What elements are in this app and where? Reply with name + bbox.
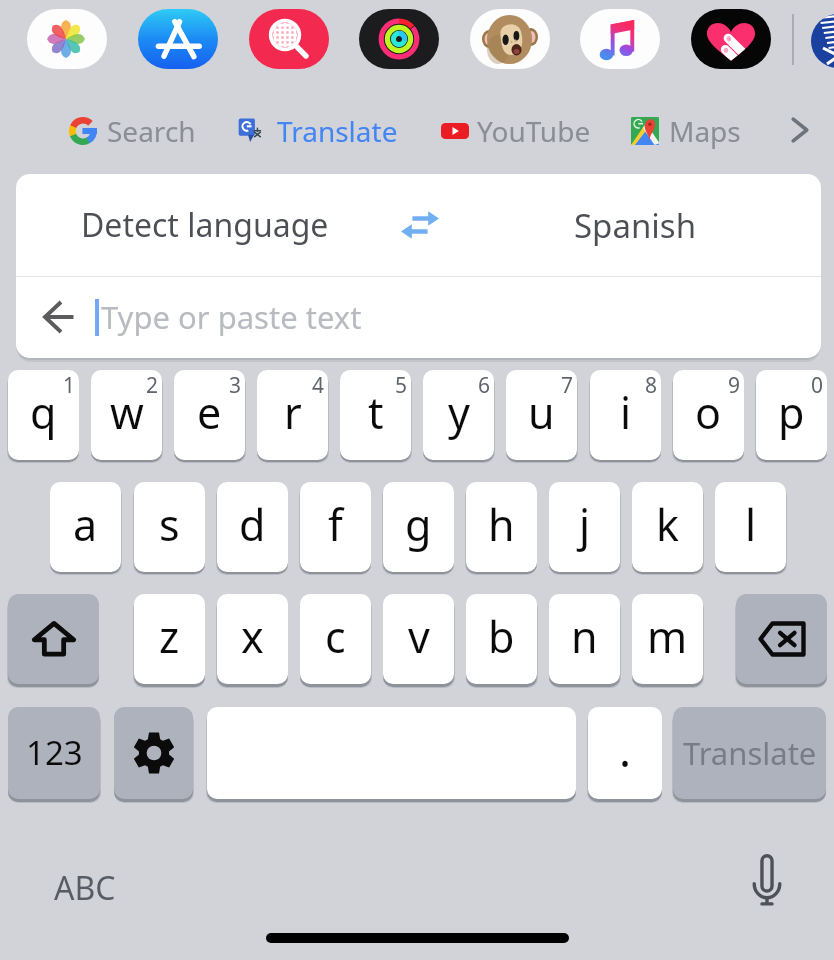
button[interactable] bbox=[59, 105, 207, 157]
button[interactable]: Siri Search bbox=[249, 9, 329, 69]
button[interactable]: l bbox=[715, 482, 786, 572]
button[interactable]: r bbox=[257, 370, 328, 460]
staticText: p bbox=[778, 383, 805, 442]
staticText: z bbox=[159, 607, 180, 666]
button[interactable]: c bbox=[300, 594, 371, 684]
button[interactable]: Photos bbox=[27, 9, 107, 69]
staticText: Translate bbox=[683, 732, 817, 774]
button[interactable]: f bbox=[300, 482, 371, 572]
staticText: Translate bbox=[277, 112, 398, 150]
staticText: s bbox=[159, 495, 180, 554]
staticText: a bbox=[73, 495, 98, 554]
staticText: 6 bbox=[478, 371, 491, 400]
button[interactable]: i bbox=[590, 370, 661, 460]
staticText: Maps bbox=[669, 112, 741, 150]
staticText: m bbox=[647, 607, 688, 666]
button[interactable]: q bbox=[8, 370, 79, 460]
staticText: g bbox=[405, 495, 432, 554]
staticText: 7 bbox=[561, 371, 574, 400]
staticText: w bbox=[110, 383, 144, 442]
button[interactable]: Spanish bbox=[446, 174, 821, 276]
staticText: 4 bbox=[312, 371, 325, 400]
button[interactable]: Backspace bbox=[736, 594, 827, 684]
button[interactable]: Swap languages bbox=[394, 174, 446, 276]
staticText: v bbox=[408, 607, 430, 666]
staticText: Search bbox=[107, 112, 196, 150]
button[interactable]: Translate bbox=[673, 707, 826, 799]
button[interactable]: j bbox=[549, 482, 620, 572]
staticText: k bbox=[656, 495, 679, 554]
button[interactable]: s bbox=[134, 482, 205, 572]
staticText: l bbox=[745, 495, 757, 554]
button[interactable]: e bbox=[174, 370, 245, 460]
staticText: i bbox=[620, 383, 632, 442]
staticText: h bbox=[488, 495, 515, 554]
button[interactable]: . bbox=[588, 707, 662, 799]
button[interactable]: x bbox=[217, 594, 288, 684]
staticText: j bbox=[579, 495, 591, 554]
staticText: t bbox=[368, 383, 384, 442]
button[interactable]: Type or paste text bbox=[101, 277, 801, 357]
button[interactable]: ABC bbox=[34, 856, 136, 920]
staticText: b bbox=[488, 607, 515, 666]
staticText: 1 bbox=[63, 371, 76, 400]
button[interactable]: Keyboard settings bbox=[114, 707, 193, 799]
staticText: 5 bbox=[395, 371, 408, 400]
button[interactable]: u bbox=[506, 370, 577, 460]
button[interactable]: t bbox=[340, 370, 411, 460]
button[interactable]: Fitness bbox=[359, 9, 439, 69]
staticText: o bbox=[695, 383, 722, 442]
button[interactable]: b bbox=[466, 594, 537, 684]
button[interactable]: d bbox=[217, 482, 288, 572]
staticText: 123 bbox=[26, 730, 83, 775]
staticText: r bbox=[284, 383, 302, 442]
button[interactable] bbox=[621, 105, 739, 157]
button[interactable]: m bbox=[632, 594, 703, 684]
button[interactable]: 123 bbox=[8, 707, 100, 799]
button[interactable]: App Store bbox=[138, 9, 218, 69]
staticText: ABC bbox=[54, 866, 116, 910]
staticText: u bbox=[528, 383, 555, 442]
staticText: . bbox=[619, 719, 632, 780]
staticText: 9 bbox=[728, 371, 741, 400]
staticText: d bbox=[239, 495, 266, 554]
button[interactable]: Health bbox=[691, 9, 771, 69]
staticText: q bbox=[30, 383, 57, 442]
button[interactable]: Music bbox=[580, 9, 660, 69]
button[interactable]: p bbox=[756, 370, 827, 460]
button[interactable]: y bbox=[423, 370, 494, 460]
button[interactable]: n bbox=[549, 594, 620, 684]
staticText: y bbox=[448, 383, 470, 442]
staticText: x bbox=[241, 607, 264, 666]
button[interactable]: a bbox=[50, 482, 121, 572]
button[interactable]: Back bbox=[28, 277, 90, 357]
staticText: 0 bbox=[811, 371, 824, 400]
button[interactable]: Shift bbox=[8, 594, 99, 684]
button[interactable]: Memoji bbox=[470, 9, 550, 69]
button[interactable]: Voice input bbox=[735, 848, 799, 912]
button[interactable]: v bbox=[383, 594, 454, 684]
button[interactable] bbox=[431, 105, 592, 157]
staticText: c bbox=[325, 607, 346, 666]
staticText: Type or paste text bbox=[101, 296, 362, 338]
button[interactable] bbox=[227, 105, 422, 157]
button[interactable]: Detect language bbox=[16, 174, 394, 276]
button[interactable]: o bbox=[673, 370, 744, 460]
button[interactable]: Another app bbox=[811, 14, 834, 68]
button[interactable]: g bbox=[383, 482, 454, 572]
staticText: YouTube bbox=[477, 112, 591, 150]
staticText: 3 bbox=[229, 371, 242, 400]
button[interactable]: w bbox=[91, 370, 162, 460]
staticText: Spanish bbox=[574, 203, 697, 248]
button[interactable]: k bbox=[632, 482, 703, 572]
staticText: n bbox=[571, 607, 598, 666]
staticText: e bbox=[197, 383, 222, 442]
button[interactable]: space bbox=[207, 707, 576, 799]
staticText: Detect language bbox=[81, 203, 329, 247]
staticText: f bbox=[328, 495, 343, 554]
button[interactable]: z bbox=[134, 594, 205, 684]
staticText: 8 bbox=[645, 371, 658, 400]
button[interactable]: More apps bbox=[774, 105, 826, 155]
staticText: 2 bbox=[146, 371, 159, 400]
button[interactable]: h bbox=[466, 482, 537, 572]
